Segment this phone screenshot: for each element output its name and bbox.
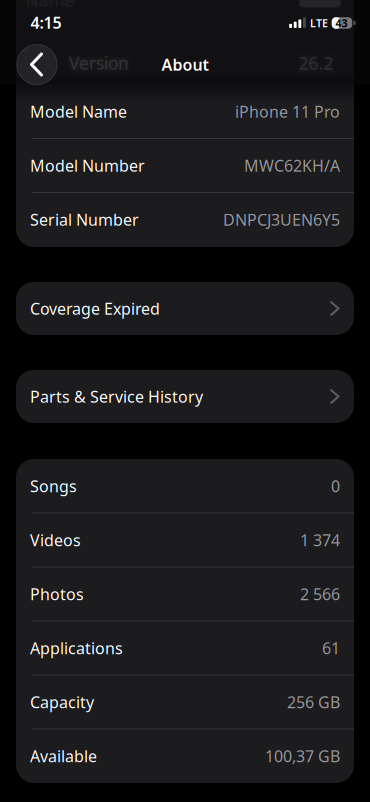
staticText: Serial Number — [30, 209, 139, 230]
staticText: Version — [69, 51, 129, 74]
staticText: DNPCJ3UEN6Y5 — [223, 209, 340, 230]
staticText: Photos — [30, 583, 84, 605]
staticText: Available — [30, 745, 97, 767]
staticText: Model Number — [30, 155, 145, 176]
staticText: 43 — [335, 16, 347, 30]
staticText: Videos — [30, 529, 81, 551]
staticText: About — [161, 54, 208, 75]
staticText: Songs — [30, 475, 77, 497]
staticText: MWC62KH/A — [244, 155, 340, 176]
staticText: 2 566 — [300, 583, 340, 605]
button[interactable]: Back — [17, 44, 57, 84]
staticText: LTE — [310, 16, 328, 30]
staticText: Name — [25, 0, 74, 11]
staticText: iPhone 11 Pro — [235, 101, 340, 122]
staticText: 0 — [331, 475, 340, 497]
staticText: Applications — [30, 637, 123, 659]
staticText: 1 374 — [300, 529, 340, 551]
staticText: 4:15 — [30, 12, 61, 33]
staticText: 256 GB — [287, 691, 340, 713]
button[interactable]: Coverage Expired — [16, 282, 354, 335]
staticText: 100,37 GB — [265, 745, 340, 767]
staticText: Model Name — [30, 101, 127, 122]
staticText: Coverage Expired — [30, 298, 160, 319]
staticText: Parts & Service History — [30, 386, 203, 407]
button[interactable]: Parts & Service History — [16, 370, 354, 423]
staticText: Capacity — [30, 691, 94, 713]
staticText: 61 — [322, 637, 340, 659]
staticText: 26.2 — [298, 51, 333, 74]
